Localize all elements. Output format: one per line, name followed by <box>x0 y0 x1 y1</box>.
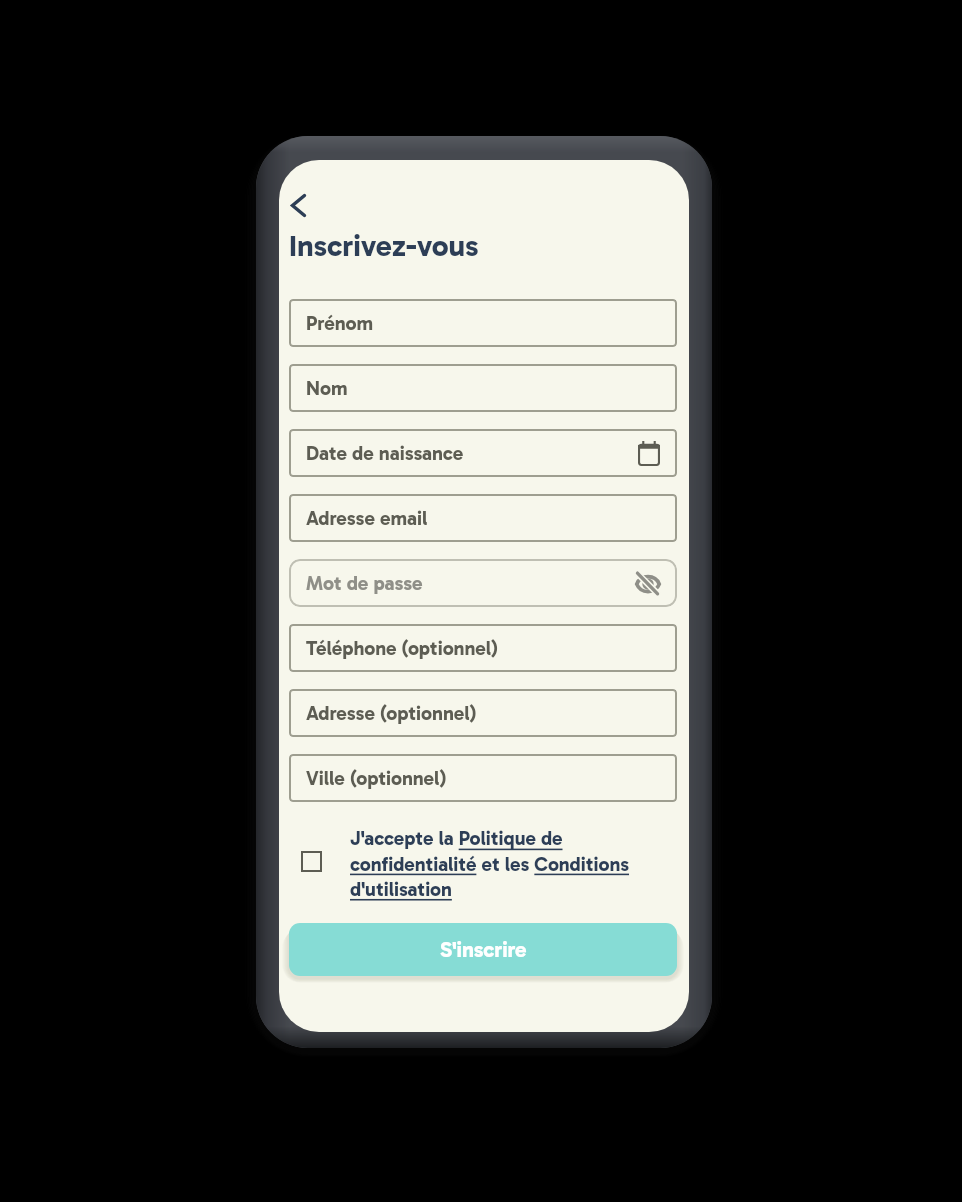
staticText: Inscrivez-vous <box>289 228 479 264</box>
button[interactable]: Show password <box>636 572 660 594</box>
staticText: Ville (optionnel) <box>306 766 447 790</box>
staticText: Prénom <box>306 311 373 335</box>
staticText: Nom <box>306 376 348 400</box>
button[interactable]: Adresse (optionnel) <box>289 689 677 737</box>
staticText: Adresse email <box>306 506 428 530</box>
button[interactable]: Accept terms <box>301 851 322 872</box>
button[interactable]: Back <box>281 188 316 223</box>
button[interactable]: Ville (optionnel) <box>289 754 677 802</box>
staticText: J'accepte la Politique de confidentialit… <box>350 827 650 901</box>
staticText: Téléphone (optionnel) <box>306 636 498 660</box>
button[interactable]: S'inscrire <box>289 923 677 976</box>
staticText: Date de naissance <box>306 441 464 465</box>
button[interactable]: Mot de passe <box>289 559 677 607</box>
button[interactable]: Téléphone (optionnel) <box>289 624 677 672</box>
button[interactable]: Date de naissance <box>289 429 677 477</box>
button[interactable]: J'accepte la Politique de confidentialit… <box>350 827 650 901</box>
button[interactable]: Pick date <box>638 441 660 466</box>
button[interactable]: Adresse email <box>289 494 677 542</box>
button[interactable]: Prénom <box>289 299 677 347</box>
staticText: Adresse (optionnel) <box>306 701 477 725</box>
button[interactable]: Nom <box>289 364 677 412</box>
staticText: Mot de passe <box>306 571 423 595</box>
staticText: S'inscrire <box>440 937 527 963</box>
